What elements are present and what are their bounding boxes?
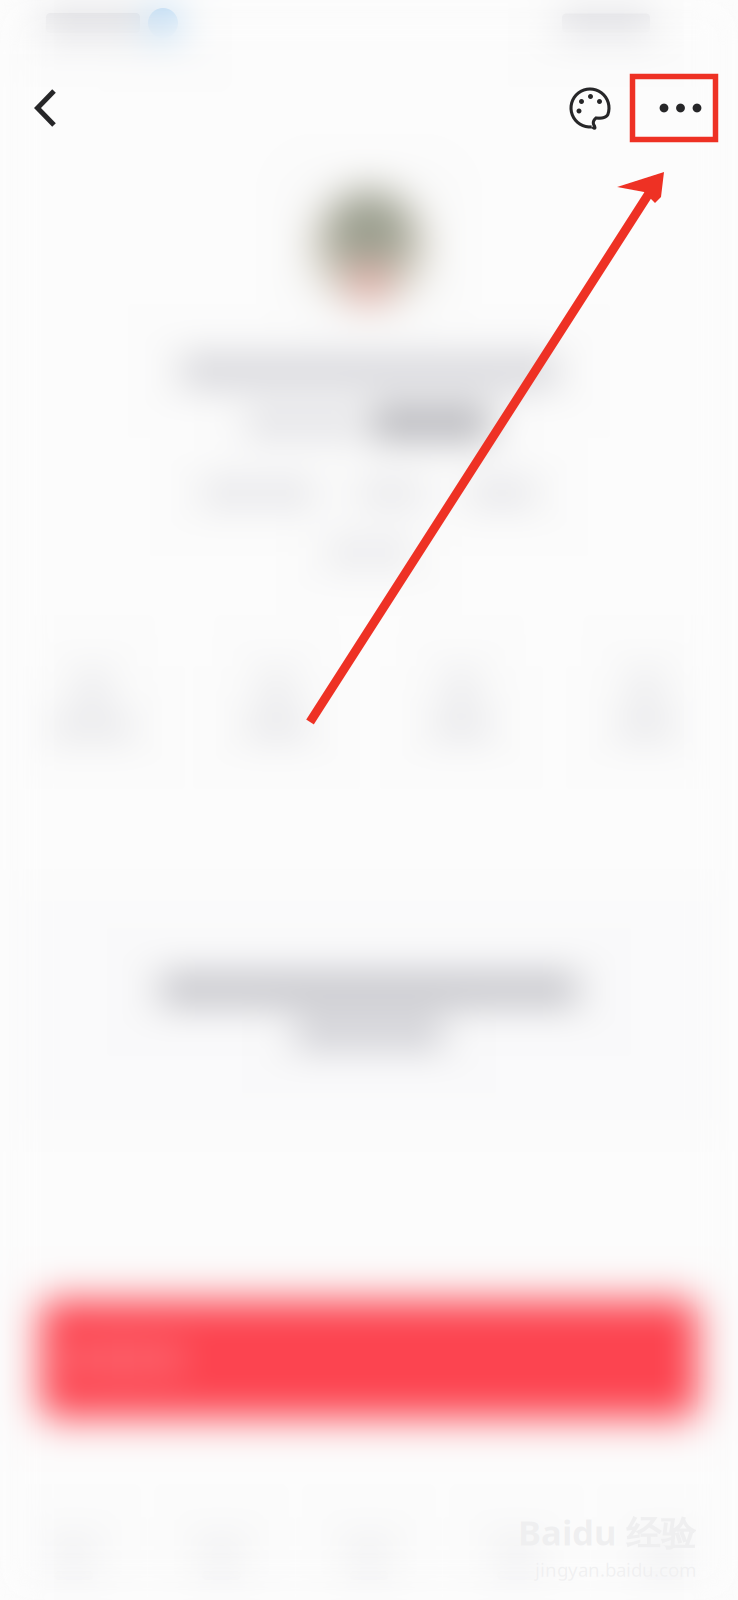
button[interactable]: More options: [630, 68, 718, 148]
button[interactable]: [40, 1300, 698, 1418]
staticText: Baidu 经验: [518, 1509, 696, 1555]
button[interactable]: Tab: [443, 1518, 590, 1600]
button[interactable]: Back: [0, 68, 76, 148]
button[interactable]: Theme: [558, 68, 630, 148]
staticText: jingyan.baidu.com: [535, 1557, 696, 1582]
button[interactable]: Tab: [590, 1518, 738, 1600]
